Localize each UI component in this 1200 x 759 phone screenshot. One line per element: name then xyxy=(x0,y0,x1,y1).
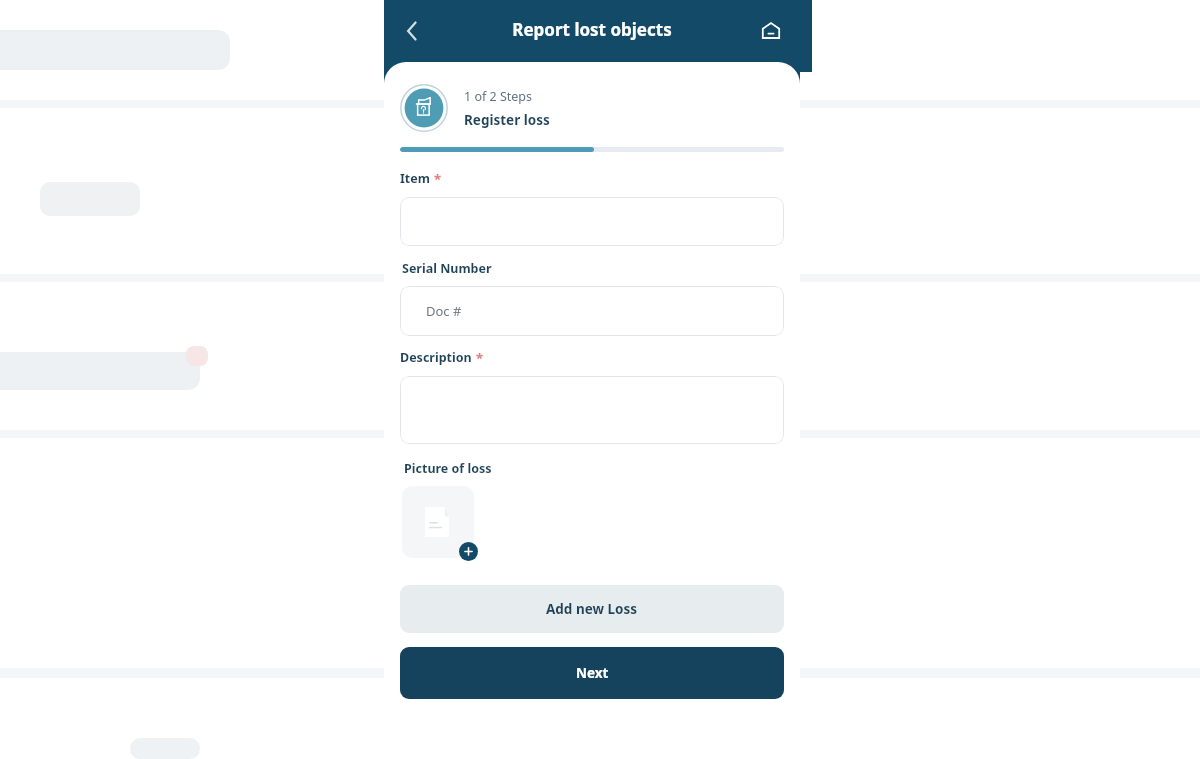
button[interactable]: Add new Loss xyxy=(400,585,784,633)
button[interactable]: Picture of loss xyxy=(402,486,474,558)
button[interactable]: Doc # xyxy=(400,286,784,336)
button[interactable] xyxy=(400,197,784,246)
staticText: Item xyxy=(400,170,430,187)
button[interactable]: Back xyxy=(392,11,432,51)
staticText: * xyxy=(434,170,442,188)
button[interactable]: Next xyxy=(400,647,784,699)
staticText: Register loss xyxy=(464,111,550,129)
staticText: * xyxy=(476,349,484,367)
staticText: Serial Number xyxy=(402,260,492,277)
staticText: Next xyxy=(576,664,609,682)
button[interactable]: Home xyxy=(752,12,790,50)
staticText: Doc # xyxy=(426,302,462,320)
staticText: 1 of 2 Steps xyxy=(464,88,533,105)
staticText: Add new Loss xyxy=(546,600,638,618)
staticText: Description xyxy=(400,349,472,366)
staticText: Picture of loss xyxy=(404,460,492,477)
button[interactable] xyxy=(400,376,784,444)
staticText: Report lost objects xyxy=(512,18,672,41)
button[interactable]: Add picture xyxy=(459,542,478,561)
